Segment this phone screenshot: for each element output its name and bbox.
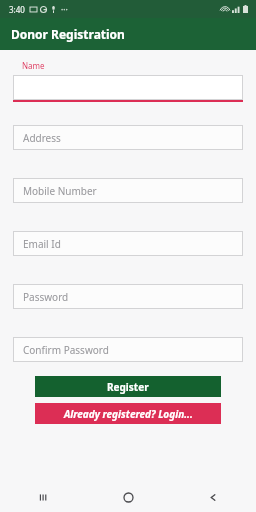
staticText: Password (23, 290, 69, 304)
staticText: ••• (61, 6, 68, 14)
button[interactable]: Register (35, 376, 221, 397)
staticText: Email Id (23, 237, 61, 251)
staticText: Mobile Number (23, 184, 97, 198)
button[interactable]: Password (13, 284, 243, 309)
button[interactable]: Address (13, 125, 243, 150)
staticText: Already registered? Login... (64, 407, 193, 421)
button[interactable]: Recents (0, 482, 86, 512)
staticText: 3:40 (9, 4, 25, 15)
button[interactable]: Home (86, 482, 171, 512)
staticText: Donor Registration (11, 26, 125, 42)
button[interactable]: Confirm Password (13, 337, 243, 362)
button[interactable]: Email Id (13, 231, 243, 256)
button[interactable]: Back (171, 482, 256, 512)
staticText: Address (23, 131, 61, 145)
button[interactable]: Already registered? Login... (35, 403, 221, 424)
button[interactable] (13, 75, 243, 102)
staticText: Register (107, 380, 149, 394)
staticText: Confirm Password (23, 343, 109, 357)
button[interactable]: Mobile Number (13, 178, 243, 203)
staticText: Name (22, 60, 45, 71)
